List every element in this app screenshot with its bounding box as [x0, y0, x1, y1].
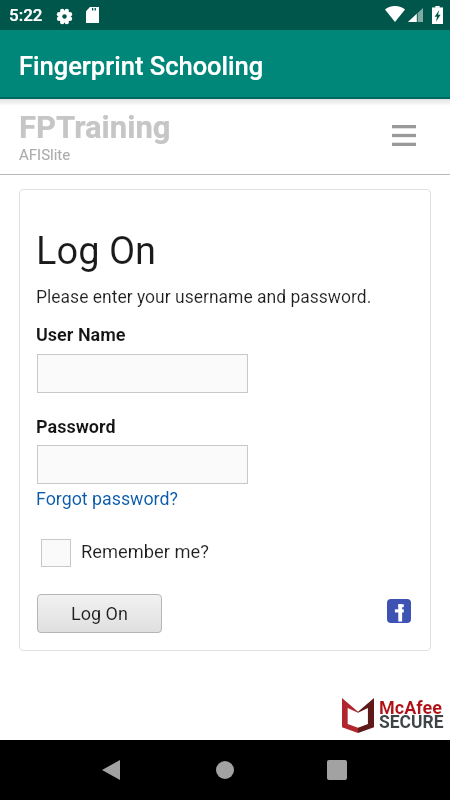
button[interactable]: Remember me? [40, 534, 240, 570]
staticText: Log On [71, 603, 128, 624]
button[interactable]: Text field [37, 354, 248, 393]
button[interactable]: Forgot password? [36, 488, 178, 509]
button[interactable]: Text field [37, 445, 248, 484]
staticText: McAfee [379, 697, 442, 718]
button[interactable]: Recents [314, 747, 360, 793]
staticText: Password [36, 416, 116, 437]
staticText: 5:22 [9, 5, 43, 25]
button[interactable]: Log On [37, 594, 162, 633]
staticText: Log On [36, 229, 157, 274]
staticText: Fingerprint Schooling [19, 51, 264, 81]
staticText: Remember me? [81, 541, 209, 562]
button[interactable]: Facebook [387, 599, 411, 623]
staticText: FPTraining [19, 109, 171, 145]
staticText: User Name [36, 324, 126, 345]
staticText: AFISlite [19, 146, 71, 164]
button[interactable]: McAfee Secure [334, 691, 450, 742]
button[interactable]: Back [88, 747, 134, 793]
button[interactable]: Menu [385, 116, 423, 154]
staticText: SECURE [379, 712, 444, 733]
staticText: Please enter your username and password. [36, 287, 372, 308]
button[interactable]: Home [202, 747, 248, 793]
